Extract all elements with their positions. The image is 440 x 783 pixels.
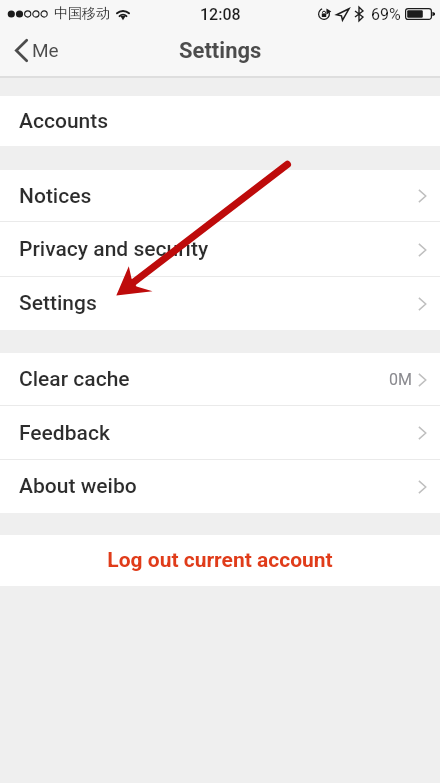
staticText: 12:08 — [200, 5, 241, 24]
staticText: 0M — [389, 370, 412, 389]
staticText: Feedback — [19, 421, 110, 446]
button[interactable]: Privacy and security — [0, 222, 440, 277]
staticText: Settings — [179, 38, 262, 64]
staticText: Log out current account — [107, 548, 333, 573]
button[interactable]: Accounts — [0, 96, 440, 146]
button[interactable]: Back — [15, 28, 59, 72]
button[interactable]: Settings — [0, 277, 440, 330]
button[interactable]: Log out current account — [0, 535, 440, 586]
staticText: Accounts — [19, 109, 109, 134]
other: Back — [15, 39, 28, 62]
button[interactable]: Clear cache — [0, 353, 440, 406]
staticText: Settings — [19, 291, 97, 316]
staticText: 69% — [371, 5, 401, 24]
staticText: Me — [32, 39, 59, 61]
staticText: Notices — [19, 184, 92, 209]
staticText: Privacy and security — [19, 237, 209, 262]
staticText: Clear cache — [19, 367, 130, 392]
staticText: About weibo — [19, 474, 137, 499]
staticText: 中国移动 — [54, 5, 110, 23]
button[interactable]: Feedback — [0, 406, 440, 460]
button[interactable]: Notices — [0, 170, 440, 222]
button[interactable]: About weibo — [0, 460, 440, 513]
